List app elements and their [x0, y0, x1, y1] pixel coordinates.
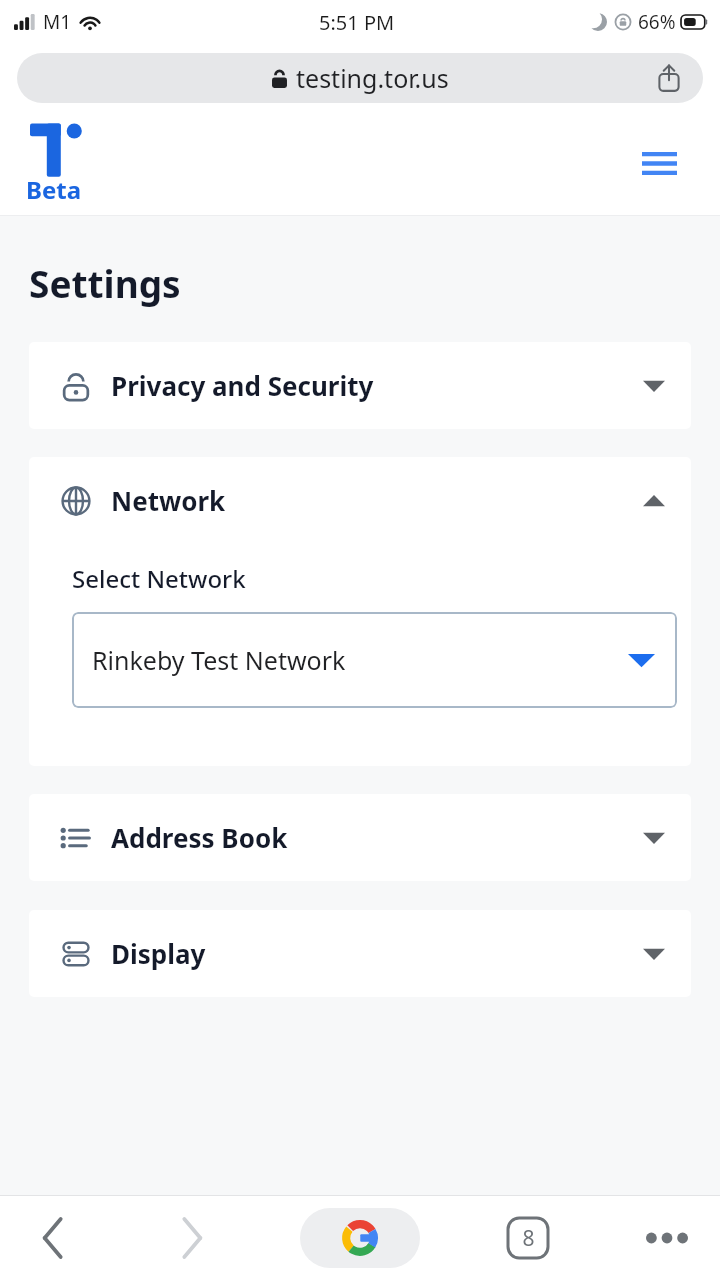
- staticText: Settings: [29, 258, 181, 308]
- staticText: 66%: [638, 9, 676, 35]
- button[interactable]: Rinkeby Test Network: [72, 612, 677, 708]
- staticText: Privacy and Security: [111, 368, 374, 403]
- staticText: testing.tor.us: [296, 61, 449, 95]
- staticText: Select Network: [72, 562, 246, 595]
- staticText: Beta: [26, 173, 82, 206]
- button[interactable]: testing.tor.us: [17, 53, 703, 103]
- button[interactable]: Forward: [161, 1207, 223, 1269]
- button[interactable]: Tabs: 8 open: [497, 1207, 559, 1269]
- button[interactable]: Network: [29, 457, 691, 544]
- button[interactable]: Display: [29, 910, 691, 997]
- staticText: Address Book: [111, 820, 288, 855]
- button[interactable]: Privacy and Security: [29, 342, 691, 429]
- button[interactable]: More options: [636, 1207, 698, 1269]
- staticText: Network: [111, 483, 226, 518]
- staticText: 5:51 PM: [319, 9, 395, 36]
- staticText: Display: [111, 936, 206, 971]
- staticText: 8: [522, 1224, 535, 1253]
- button[interactable]: Search with Google: [300, 1208, 420, 1268]
- button[interactable]: Menu: [636, 140, 682, 186]
- button[interactable]: Share: [649, 58, 689, 98]
- staticText: Rinkeby Test Network: [92, 643, 346, 677]
- button[interactable]: Torus Beta home: [26, 120, 98, 206]
- button[interactable]: Address Book: [29, 794, 691, 881]
- button[interactable]: Back: [22, 1207, 84, 1269]
- staticText: M1: [43, 9, 72, 35]
